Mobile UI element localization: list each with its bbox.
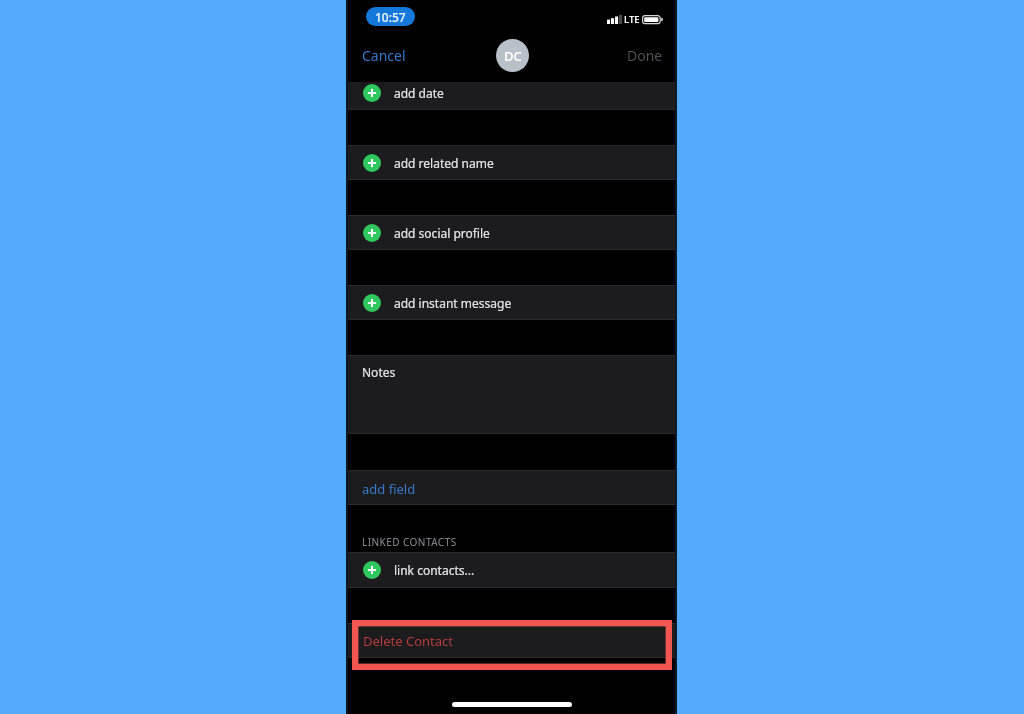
button[interactable]: Done — [615, 37, 675, 74]
staticText: add instant message — [394, 295, 512, 311]
staticText: add social profile — [394, 225, 490, 241]
button[interactable]: Cancel — [348, 37, 418, 74]
staticText: Notes — [362, 364, 396, 380]
button[interactable]: add date — [348, 75, 675, 110]
staticText: add field — [362, 480, 416, 498]
staticText: 10:57 — [375, 9, 406, 25]
button[interactable]: add instant message — [348, 285, 675, 320]
button[interactable]: add field — [348, 470, 675, 505]
staticText: link contacts... — [394, 562, 475, 578]
staticText: LINKED CONTACTS — [362, 535, 457, 549]
button[interactable]: link contacts... — [348, 552, 675, 588]
staticText: Cancel — [362, 46, 406, 65]
staticText: LTE — [624, 13, 640, 26]
button[interactable]: Delete Contact — [348, 623, 675, 658]
button[interactable]: Contact photo — [496, 39, 529, 72]
button[interactable]: add social profile — [348, 215, 675, 250]
button[interactable]: add related name — [348, 145, 675, 180]
staticText: Delete Contact — [363, 632, 453, 650]
staticText: add date — [394, 85, 444, 101]
staticText: Done — [627, 46, 663, 65]
staticText: add related name — [394, 155, 494, 171]
button[interactable]: Notes — [348, 355, 675, 434]
staticText: DC — [504, 47, 522, 65]
